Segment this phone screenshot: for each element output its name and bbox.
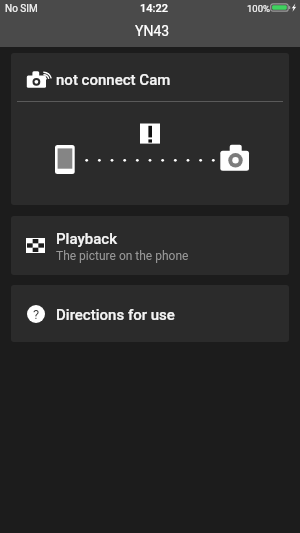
staticText: not connect Cam <box>56 71 171 89</box>
staticText: YN43 <box>135 23 170 39</box>
other: Battery charging <box>270 3 297 13</box>
staticText: ? <box>33 307 40 322</box>
button[interactable]: ? <box>11 285 289 342</box>
staticText: No SIM <box>5 3 38 15</box>
staticText: 14:22 <box>140 2 168 15</box>
staticText: Playback <box>56 230 118 248</box>
staticText: Directions for use <box>56 306 175 324</box>
staticText: 100% <box>247 3 270 14</box>
button[interactable]: Playback <box>11 216 289 275</box>
staticText: The picture on the phone <box>56 249 189 263</box>
button[interactable]: not connect Cam <box>11 53 289 205</box>
